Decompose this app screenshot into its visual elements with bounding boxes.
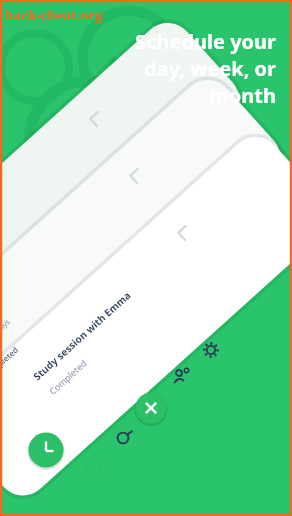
button[interactable]: Search — [111, 426, 136, 451]
button[interactable]: Close — [136, 393, 167, 424]
button[interactable]: Settings — [199, 338, 224, 363]
button[interactable]: People — [170, 365, 195, 390]
button[interactable]: Timer — [28, 432, 64, 468]
